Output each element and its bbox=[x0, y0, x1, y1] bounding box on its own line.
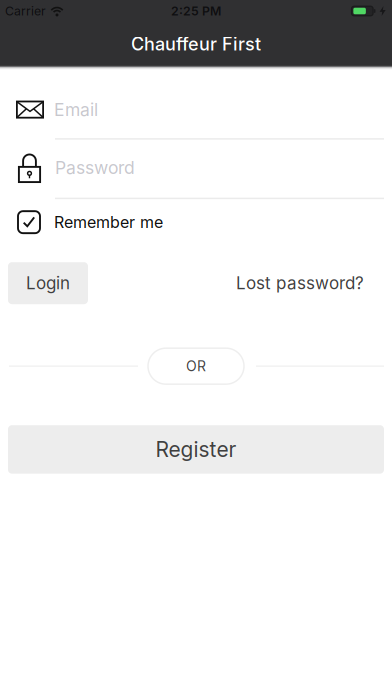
staticText: Lost password? bbox=[236, 273, 364, 293]
button[interactable]: Password bbox=[0, 153, 392, 183]
button[interactable]: Email bbox=[0, 99, 392, 120]
staticText: 2:25 PM bbox=[171, 4, 221, 18]
staticText: Carrier bbox=[5, 4, 46, 18]
button[interactable]: Login bbox=[8, 262, 88, 304]
staticText: Register bbox=[155, 437, 236, 462]
staticText: Login bbox=[26, 273, 70, 293]
staticText: Remember me bbox=[54, 212, 163, 232]
staticText: Password bbox=[55, 157, 135, 178]
staticText: Email bbox=[54, 99, 98, 120]
button[interactable]: Lost password? bbox=[236, 273, 364, 293]
staticText: Chauffeur First bbox=[131, 33, 261, 55]
button[interactable]: Register bbox=[8, 425, 384, 474]
staticText: OR bbox=[186, 358, 206, 375]
button[interactable]: Remember me bbox=[0, 211, 392, 233]
